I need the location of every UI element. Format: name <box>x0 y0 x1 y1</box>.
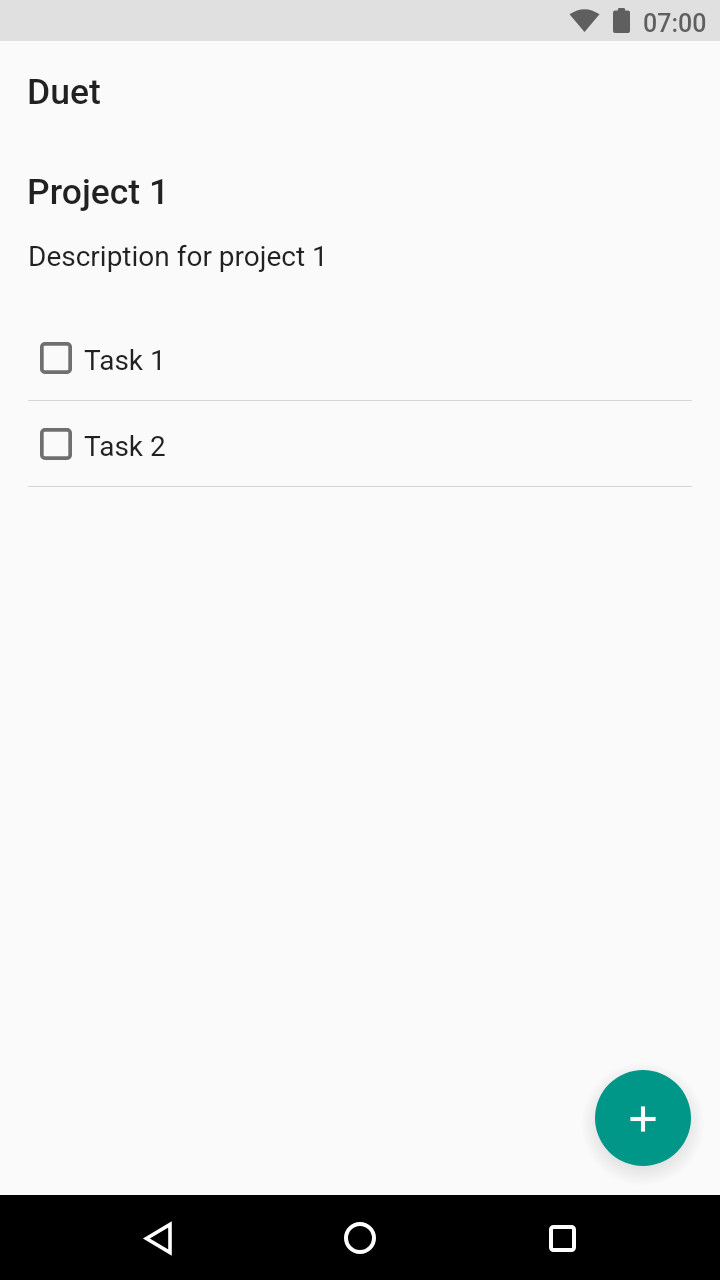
button[interactable]: Add task <box>595 1070 691 1166</box>
staticText: Task 1 <box>84 344 166 377</box>
staticText: Description for project 1 <box>28 240 328 273</box>
staticText: 07:00 <box>643 9 707 38</box>
button[interactable]: Back <box>130 1210 186 1266</box>
staticText: Project 1 <box>27 171 170 213</box>
staticText: Duet <box>27 71 101 113</box>
staticText: Task 2 <box>84 430 166 463</box>
button[interactable]: Task 1 <box>0 315 720 401</box>
button[interactable]: Task 2 <box>0 401 720 487</box>
button[interactable]: Recent apps <box>534 1210 590 1266</box>
button[interactable]: Home <box>332 1210 388 1266</box>
